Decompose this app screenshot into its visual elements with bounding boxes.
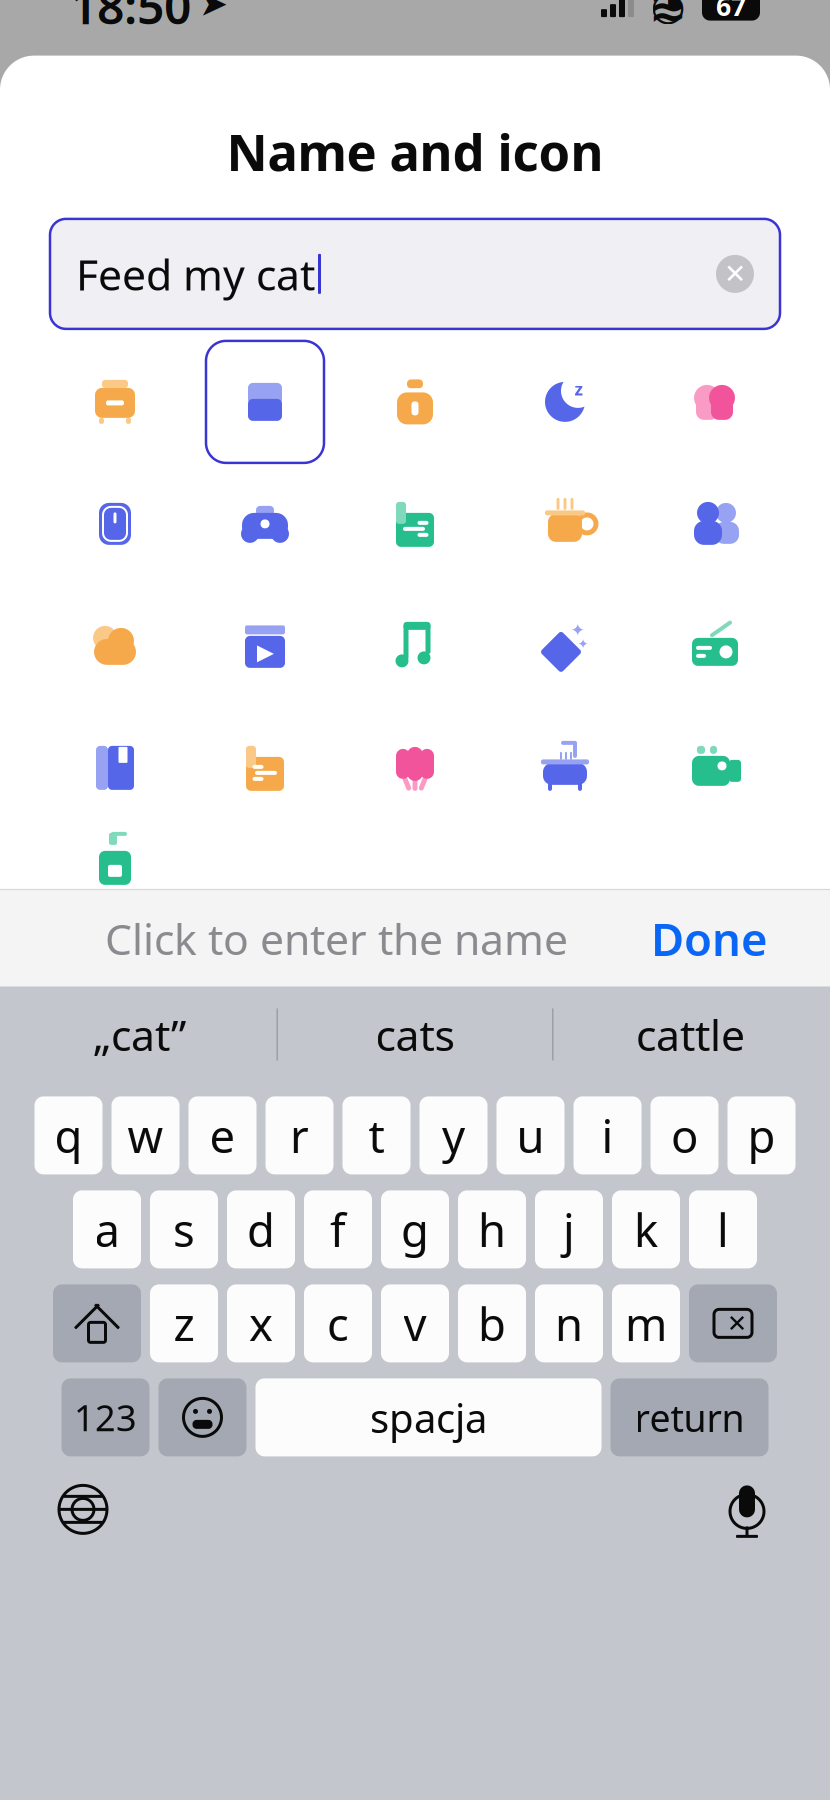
staticText: ✕ (724, 259, 746, 289)
staticText: u (516, 1105, 544, 1165)
button[interactable]: Icon option (340, 463, 490, 585)
staticText: b (478, 1293, 506, 1353)
button[interactable]: b (458, 1284, 526, 1362)
button[interactable]: Done (635, 900, 784, 976)
button[interactable]: Shift (53, 1284, 141, 1362)
button[interactable]: cats (278, 986, 552, 1082)
staticText: Click to enter the name (105, 910, 568, 967)
button[interactable]: Icon option (190, 585, 340, 707)
staticText: v (403, 1293, 426, 1353)
staticText: x (249, 1293, 273, 1353)
button[interactable]: d (227, 1190, 295, 1268)
button[interactable]: v (381, 1284, 449, 1362)
staticText: ✦ (577, 636, 588, 651)
button[interactable]: Icon option (640, 463, 790, 585)
button[interactable]: p (727, 1096, 795, 1174)
staticText: e (209, 1105, 235, 1165)
button[interactable]: 123 (61, 1378, 149, 1456)
button[interactable]: Icon option (490, 463, 640, 585)
button[interactable]: return (610, 1378, 768, 1456)
staticText: ➤ (199, 0, 228, 23)
button[interactable]: Icon option (40, 798, 190, 920)
button[interactable]: Change keyboard (48, 1474, 118, 1544)
button[interactable]: y (419, 1096, 487, 1174)
staticText: f (330, 1199, 346, 1259)
staticText: a (94, 1199, 119, 1259)
button[interactable]: u (496, 1096, 564, 1174)
button[interactable]: Emoji (158, 1378, 246, 1456)
button[interactable]: x (227, 1284, 295, 1362)
button[interactable]: „cat” (2, 986, 276, 1082)
button[interactable]: Icon option (340, 707, 490, 829)
staticText: ✦ (570, 620, 585, 640)
button[interactable]: Icon option (40, 463, 190, 585)
staticText: 18:50 (70, 0, 191, 37)
button[interactable]: w (111, 1096, 179, 1174)
button[interactable]: Icon option (340, 341, 490, 463)
staticText: o (671, 1105, 698, 1165)
staticText: ◔ (650, 0, 685, 28)
staticText: Feed my cat (76, 246, 315, 302)
button[interactable]: Icon option (190, 463, 340, 585)
staticText: k (634, 1199, 658, 1259)
button[interactable]: Icon option (490, 341, 640, 463)
button[interactable]: Icon option (40, 341, 190, 463)
button[interactable]: Icon option (640, 707, 790, 829)
staticText: return (634, 1393, 744, 1442)
button[interactable]: h (458, 1190, 526, 1268)
staticText: Name and icon (226, 118, 603, 185)
button[interactable]: Delete (689, 1284, 777, 1362)
staticText: z (173, 1293, 194, 1353)
staticText: r (290, 1105, 309, 1165)
button[interactable]: Dictate (712, 1474, 782, 1544)
button[interactable]: r (265, 1096, 333, 1174)
button[interactable]: Icon option (40, 707, 190, 829)
button[interactable]: Icon option (190, 707, 340, 829)
button[interactable]: q (34, 1096, 102, 1174)
button[interactable]: i (573, 1096, 641, 1174)
button[interactable]: k (612, 1190, 680, 1268)
button[interactable]: a (73, 1190, 141, 1268)
button[interactable]: Icon option (640, 341, 790, 463)
button[interactable]: f (304, 1190, 372, 1268)
button[interactable]: spacja (255, 1378, 601, 1456)
staticText: cattle (636, 1006, 745, 1063)
button[interactable]: Icon option (340, 585, 490, 707)
staticText: ✕ (727, 1310, 747, 1337)
staticText: s (173, 1199, 195, 1259)
button[interactable]: Icon option (490, 707, 640, 829)
button[interactable]: m (612, 1284, 680, 1362)
staticText: „cat” (93, 1006, 186, 1063)
staticText: n (555, 1293, 583, 1353)
button[interactable]: cattle (553, 986, 827, 1082)
button[interactable]: s (150, 1190, 218, 1268)
button[interactable]: Icon option (190, 341, 340, 463)
button[interactable]: c (304, 1284, 372, 1362)
staticText: c (327, 1293, 349, 1353)
staticText: y (442, 1105, 465, 1165)
staticText: 67 (716, 0, 746, 23)
staticText: 123 (74, 1393, 137, 1441)
button[interactable]: z (150, 1284, 218, 1362)
staticText: d (247, 1199, 275, 1259)
button[interactable]: Feed my cat (50, 219, 780, 329)
button[interactable]: Icon option (640, 585, 790, 707)
button[interactable]: o (650, 1096, 718, 1174)
staticText: spacja (370, 1391, 487, 1444)
button[interactable]: l (689, 1190, 757, 1268)
button[interactable]: n (535, 1284, 603, 1362)
staticText: h (478, 1199, 506, 1259)
button[interactable]: t (342, 1096, 410, 1174)
staticText: cats (375, 1006, 454, 1063)
staticText: g (401, 1199, 429, 1259)
staticText: Done (651, 908, 768, 968)
staticText: ▶ (256, 639, 273, 665)
button[interactable]: e (188, 1096, 256, 1174)
staticText: m (625, 1293, 667, 1353)
button[interactable]: g (381, 1190, 449, 1268)
button[interactable]: j (535, 1190, 603, 1268)
button[interactable]: Icon option (490, 585, 640, 707)
staticText: ≋ (649, 0, 687, 31)
button[interactable]: Icon option (40, 585, 190, 707)
staticText: p (747, 1105, 775, 1165)
